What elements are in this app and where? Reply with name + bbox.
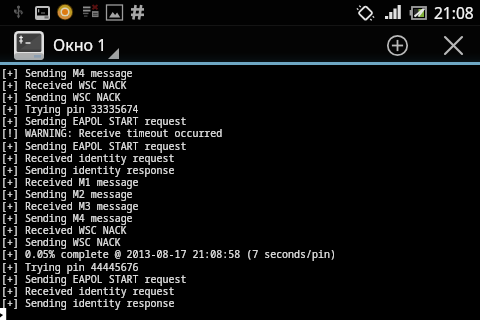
staticText: [+] Trying pin 33335674 — [1, 102, 139, 116]
staticText: [+] Sending WSC NACK — [1, 90, 121, 104]
staticText: [+] Sending M2 message — [1, 187, 133, 201]
button[interactable]: Close window — [430, 25, 476, 65]
staticText: [+] Sending EAPOL START request — [1, 139, 187, 153]
staticText: [+] Sending identity response — [1, 296, 175, 310]
button[interactable]: Окно 1 — [0, 25, 123, 65]
button[interactable]: [+] Sending M4 message — [0, 65, 480, 320]
staticText: [+] Sending EAPOL START request — [1, 114, 187, 128]
staticText: [!] WARNING: Receive timeout occurred — [1, 126, 223, 140]
staticText: [+] Sending identity response — [1, 163, 175, 177]
button[interactable]: New window — [374, 25, 420, 65]
staticText: [+] Sending M4 message — [1, 66, 133, 80]
staticText: [+] Received M1 message — [1, 175, 139, 189]
staticText: [+] Received WSC NACK — [1, 223, 127, 237]
staticText: [+] Trying pin 44445676 — [1, 260, 139, 274]
staticText: [+] Received identity request — [1, 151, 175, 165]
staticText: Окно 1 — [53, 34, 107, 56]
staticText: [+] Sending EAPOL START request — [1, 272, 187, 286]
staticText: 21:08 — [434, 2, 474, 23]
staticText: [+] 0.05% complete @ 2013-08-17 21:08:58… — [1, 247, 336, 261]
staticText: [+] Received WSC NACK — [1, 78, 127, 92]
staticText: [+] Received identity request — [1, 284, 175, 298]
staticText: [+] Received M3 message — [1, 199, 139, 213]
staticText: [+] Sending WSC NACK — [1, 235, 121, 249]
staticText: [+] Sending M4 message — [1, 211, 133, 225]
